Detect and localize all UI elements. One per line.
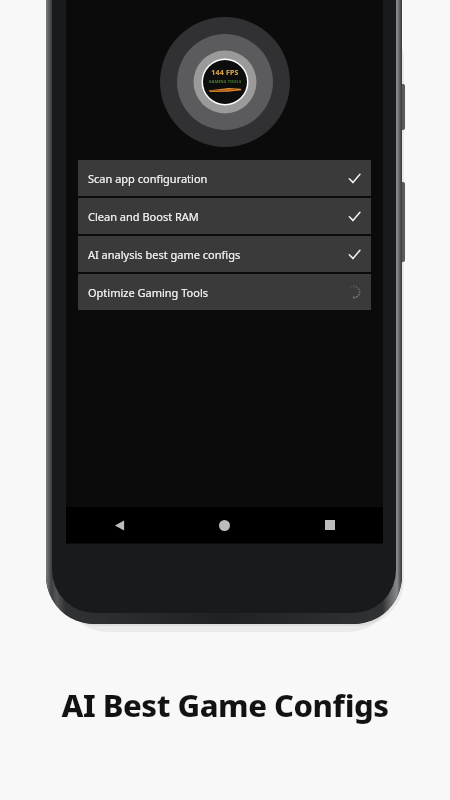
other: Done xyxy=(348,210,361,223)
staticText: Scan app configuration xyxy=(88,171,348,186)
staticText: AI analysis best game configs xyxy=(88,247,348,262)
other: Done xyxy=(348,248,361,261)
staticText: AI Best Game Configs xyxy=(0,684,450,726)
staticText: Clean and Boost RAM xyxy=(88,209,348,224)
staticText: 144 FPS xyxy=(202,68,248,78)
button[interactable]: Clean and Boost RAM xyxy=(78,198,371,234)
button[interactable]: Back xyxy=(101,507,137,543)
button[interactable]: Optimize Gaming Tools xyxy=(78,274,371,310)
button[interactable]: AI analysis best game configs xyxy=(78,236,371,272)
other: Done xyxy=(348,172,361,185)
other: Loading xyxy=(347,285,361,299)
button[interactable]: Home xyxy=(206,507,242,543)
staticText: Optimize Gaming Tools xyxy=(88,285,347,300)
staticText: GAMING TOOLS xyxy=(202,79,248,84)
button[interactable]: Recents xyxy=(312,507,348,543)
button[interactable]: Scan app configuration xyxy=(78,160,371,196)
